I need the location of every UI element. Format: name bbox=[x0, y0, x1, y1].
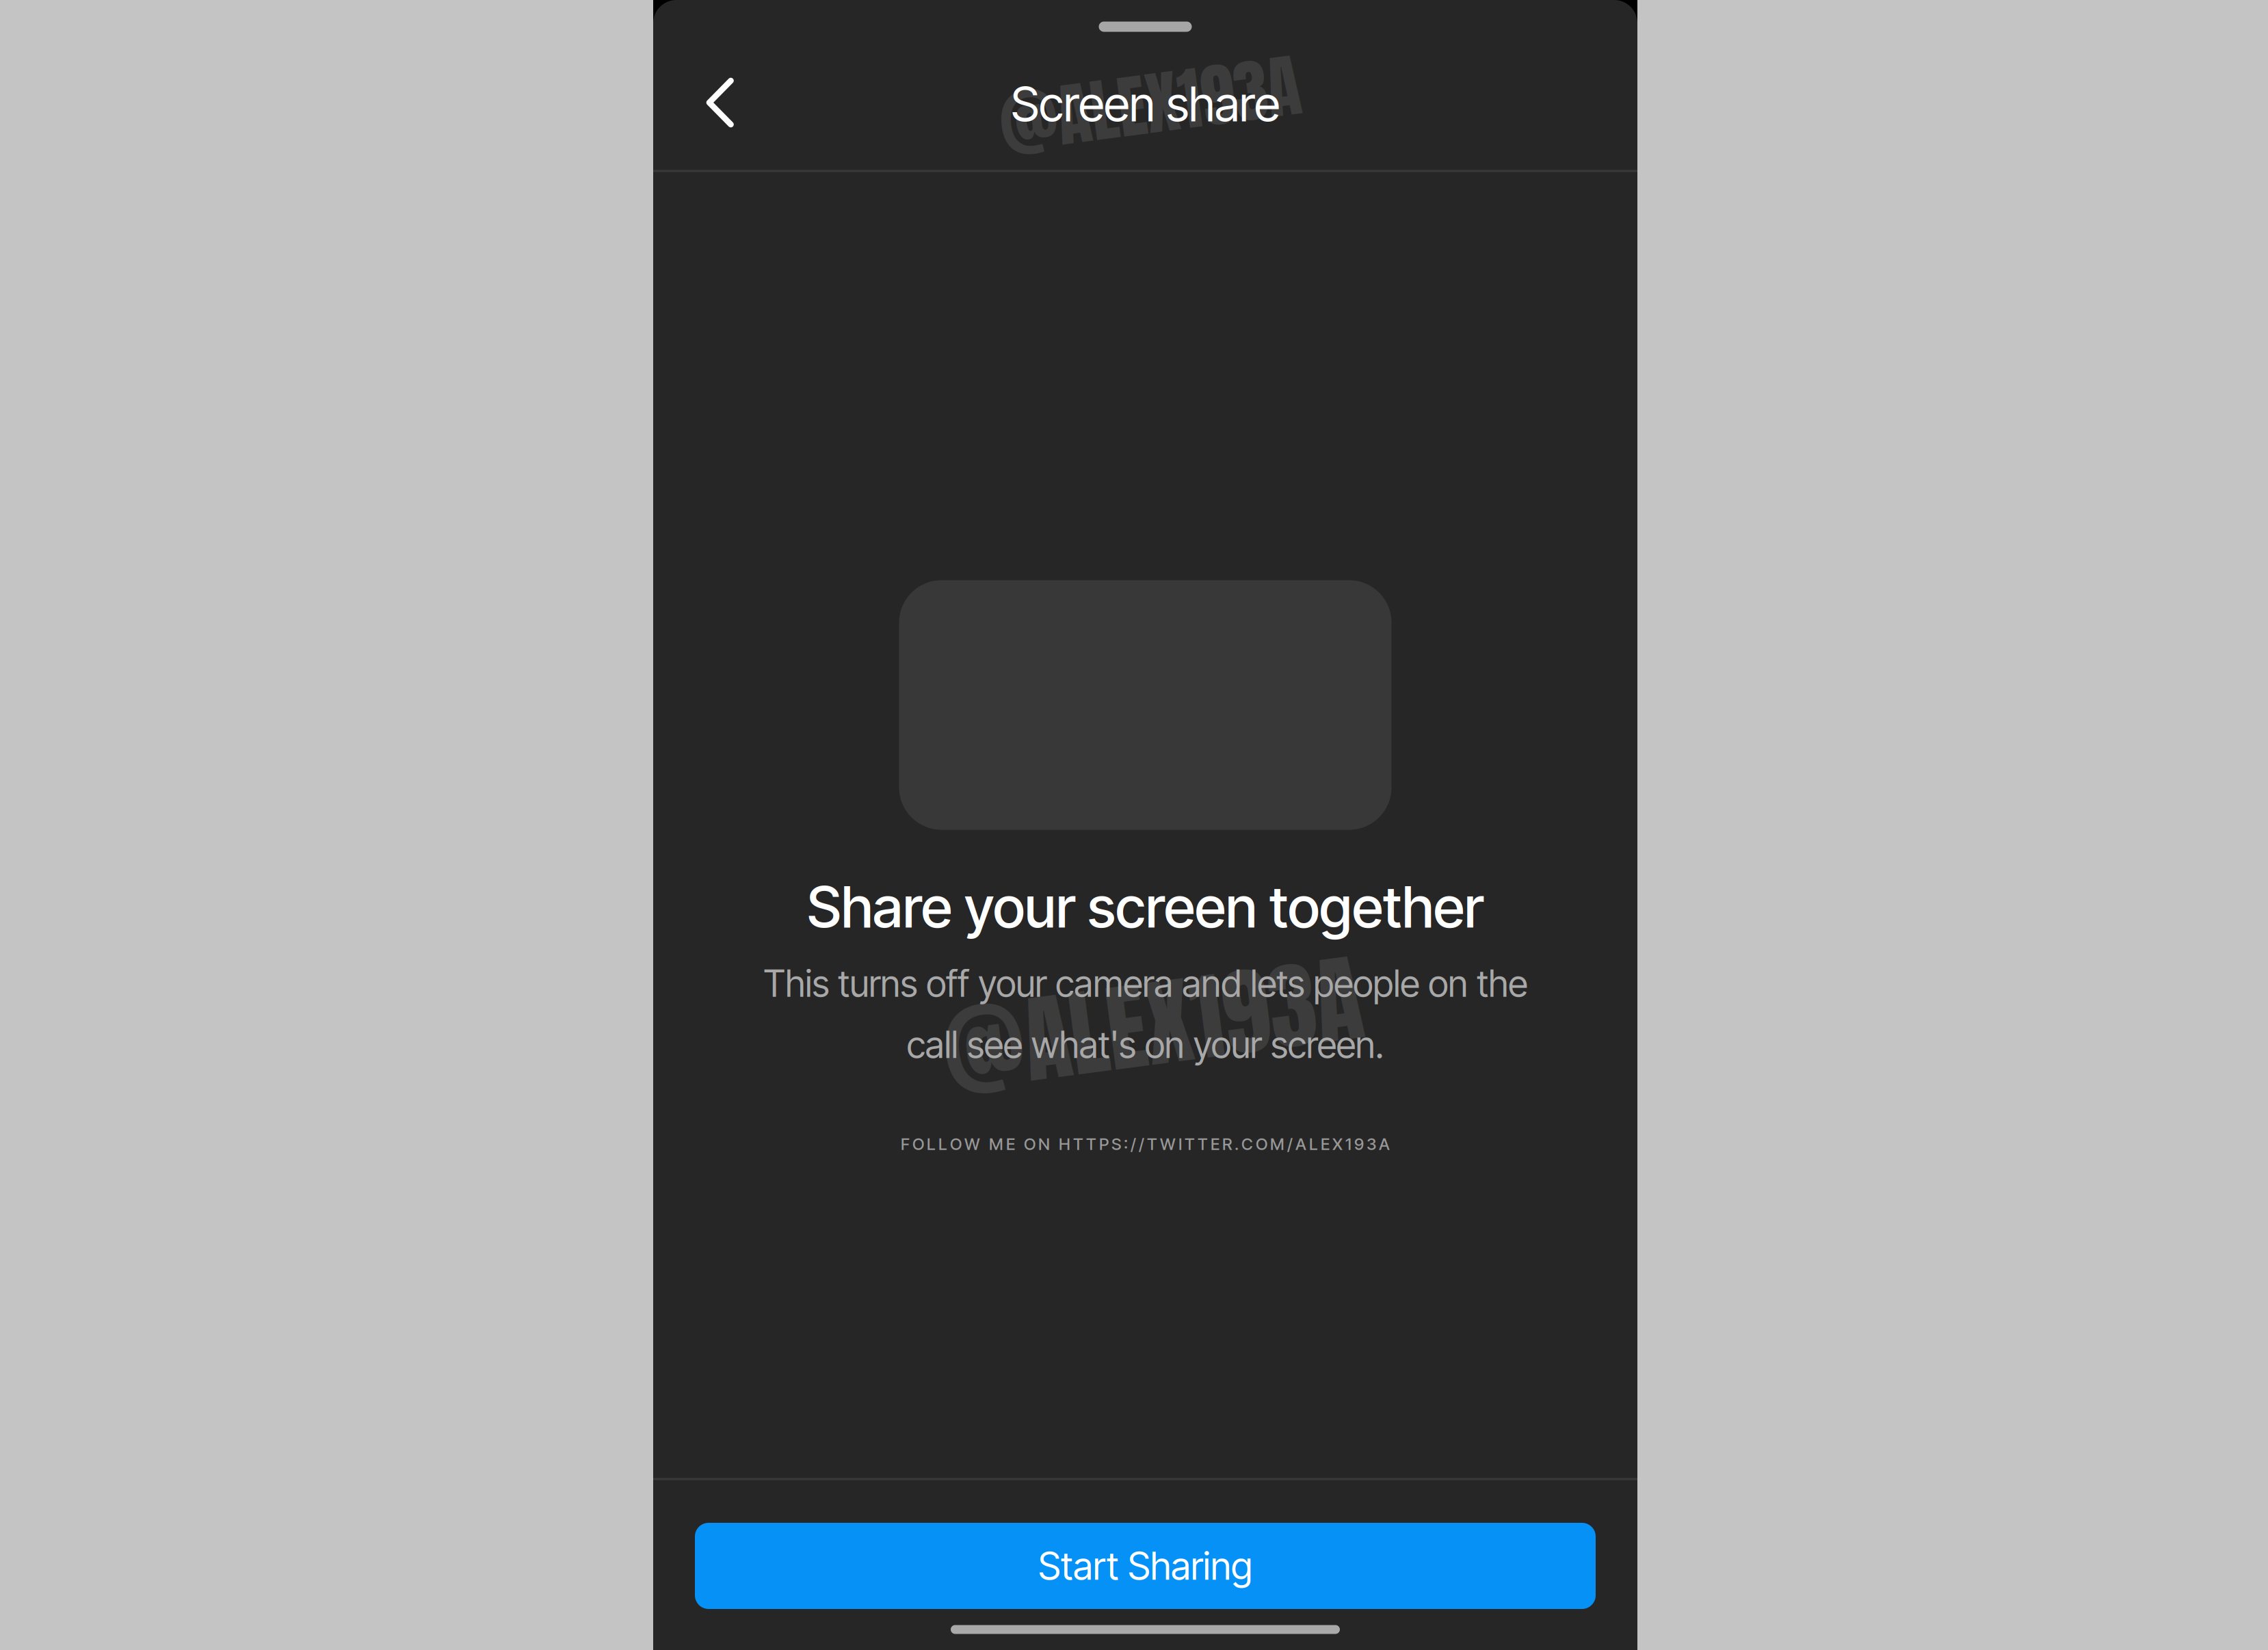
staticText: @ALEX193A bbox=[998, 52, 1302, 155]
staticText: Screen share bbox=[1011, 75, 1280, 133]
staticText: Share your screen together bbox=[807, 873, 1484, 941]
staticText: @ALEX193A bbox=[941, 953, 1363, 1096]
staticText: F O L L O W M E O N H T T P S : / / T W … bbox=[901, 1134, 1390, 1154]
staticText: This turns off your camera and lets peop… bbox=[763, 961, 1527, 1067]
button[interactable]: Back bbox=[669, 51, 772, 154]
button[interactable]: Start Sharing bbox=[695, 1523, 1596, 1609]
staticText: Start Sharing bbox=[1038, 1543, 1252, 1589]
